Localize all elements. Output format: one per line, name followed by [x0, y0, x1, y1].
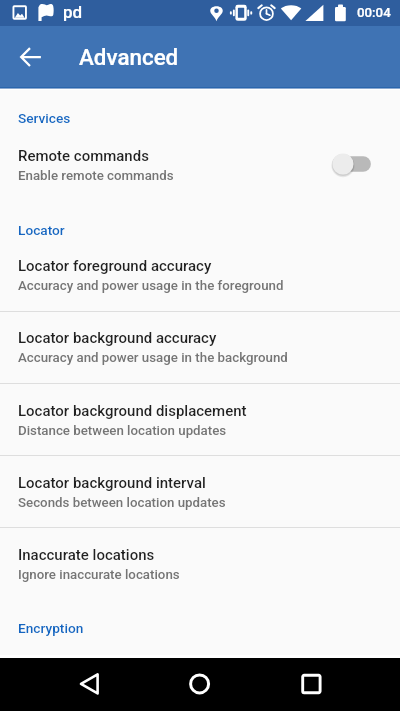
button[interactable]: Back [68, 658, 112, 711]
staticText: Locator background displacement [18, 402, 247, 420]
staticText: Locator background accuracy [18, 329, 217, 347]
staticText: Locator [18, 222, 65, 238]
staticText: Accuracy and power usage in the backgrou… [18, 350, 288, 366]
staticText: Inaccurate locations [18, 546, 155, 564]
staticText: Distance between location updates [18, 423, 227, 439]
button[interactable]: Locator background displacement [0, 383, 400, 455]
button[interactable]: Recents [289, 658, 333, 711]
staticText: Locator background interval [18, 474, 206, 492]
staticText: Seconds between location updates [18, 495, 226, 511]
button[interactable]: Locator background accuracy [0, 311, 400, 383]
button[interactable]: Back [7, 31, 51, 75]
button[interactable]: Locator background interval [0, 456, 400, 528]
staticText: Locator foreground accuracy [18, 257, 212, 275]
button[interactable]: Home [177, 658, 221, 711]
staticText: 00:04 [357, 5, 391, 21]
staticText: Remote commands [18, 147, 149, 165]
staticText: Services [18, 110, 71, 126]
staticText: Ignore inaccurate locations [18, 567, 180, 583]
staticText: Advanced [79, 44, 179, 70]
staticText: Accuracy and power usage in the foregrou… [18, 278, 284, 294]
button[interactable]: Inaccurate locations [0, 528, 400, 600]
staticText: Enable remote commands [18, 168, 174, 184]
button[interactable]: Remote commands [0, 129, 400, 201]
staticText: Encryption [18, 620, 84, 636]
button[interactable]: Remote commands toggle [319, 144, 367, 184]
button[interactable]: Locator foreground accuracy [0, 239, 400, 311]
staticText: pd [63, 2, 83, 22]
